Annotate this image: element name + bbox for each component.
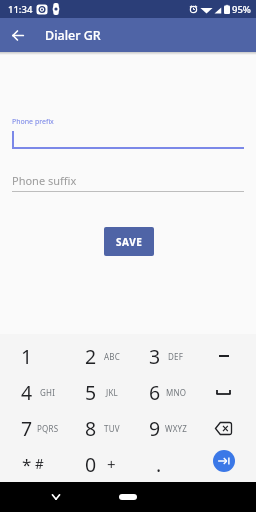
staticText: # bbox=[35, 455, 44, 473]
staticText: 95% bbox=[232, 3, 251, 16]
button[interactable]: * bbox=[0, 446, 64, 482]
staticText: 0 bbox=[85, 451, 97, 478]
button[interactable]: 6 bbox=[128, 374, 192, 410]
staticText: GHI bbox=[40, 387, 56, 398]
button[interactable]: 4 bbox=[0, 374, 64, 410]
staticText: + bbox=[107, 454, 116, 474]
staticText: . bbox=[156, 451, 162, 478]
button[interactable]: SAVE bbox=[104, 227, 154, 256]
staticText: TUV bbox=[104, 423, 120, 434]
button[interactable]: 7 bbox=[0, 410, 64, 446]
button[interactable]: 0 bbox=[64, 446, 128, 482]
staticText: Phone prefix bbox=[12, 117, 54, 127]
staticText: MNO bbox=[166, 387, 187, 398]
staticText: ABC bbox=[104, 351, 120, 362]
staticText: 1 bbox=[21, 343, 33, 370]
staticText: DEF bbox=[168, 351, 184, 362]
staticText: 8 bbox=[85, 415, 97, 442]
staticText: WXYZ bbox=[165, 423, 188, 434]
button[interactable]: 3 bbox=[128, 338, 192, 374]
staticText: 2 bbox=[85, 343, 97, 370]
staticText: 9 bbox=[149, 415, 161, 442]
staticText: 11:34 bbox=[8, 3, 33, 16]
button[interactable]: 2 bbox=[64, 338, 128, 374]
button[interactable]: Space bbox=[192, 374, 256, 410]
button[interactable]: Home bbox=[98, 485, 158, 509]
button[interactable]: Hide keyboard bbox=[44, 485, 68, 509]
button[interactable]: 5 bbox=[64, 374, 128, 410]
button[interactable]: Back bbox=[0, 18, 36, 52]
button[interactable]: Backspace bbox=[192, 410, 256, 446]
staticText: JKL bbox=[106, 387, 118, 398]
button[interactable]: 1 bbox=[0, 338, 64, 374]
staticText: 5 bbox=[85, 379, 97, 406]
staticText: Phone suffix bbox=[12, 173, 77, 188]
staticText: Dialer GR bbox=[45, 27, 101, 44]
button[interactable]: Dash bbox=[192, 338, 256, 374]
staticText: SAVE bbox=[116, 235, 143, 249]
staticText: PQRS bbox=[37, 423, 59, 434]
staticText: * bbox=[22, 453, 32, 476]
button[interactable]: 9 bbox=[128, 410, 192, 446]
staticText: 6 bbox=[149, 379, 161, 406]
button[interactable]: Next bbox=[192, 446, 256, 482]
button[interactable]: . bbox=[128, 446, 192, 482]
staticText: 4 bbox=[21, 379, 33, 406]
button[interactable]: 8 bbox=[64, 410, 128, 446]
staticText: 7 bbox=[21, 415, 33, 442]
staticText: 3 bbox=[149, 343, 161, 370]
